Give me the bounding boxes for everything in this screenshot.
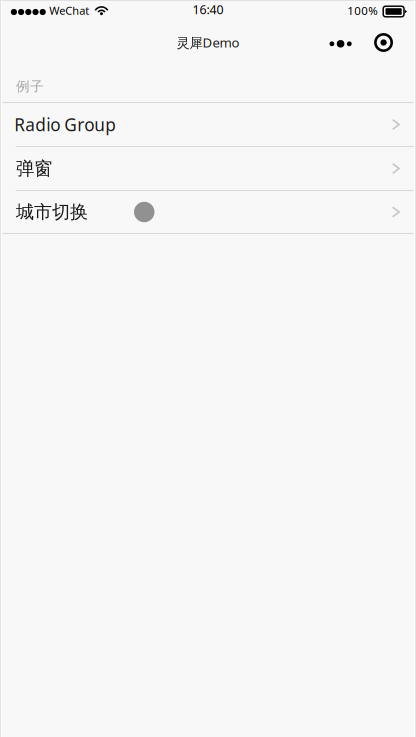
staticText: 16:40 [192, 1, 223, 18]
button[interactable]: Close mini program [372, 31, 395, 54]
staticText: Radio Group [14, 113, 116, 136]
button[interactable]: 城市切换 [0, 191, 416, 233]
button[interactable]: Radio Group [0, 103, 416, 146]
staticText: WeChat [49, 3, 89, 18]
button[interactable]: More options [325, 31, 356, 54]
staticText: 100% [347, 3, 378, 18]
staticText: 城市切换 [16, 201, 88, 223]
staticText: 例子 [16, 78, 44, 95]
button[interactable]: 弹窗 [0, 147, 416, 190]
staticText: 弹窗 [16, 157, 52, 180]
staticText: 灵犀Demo [176, 33, 239, 51]
